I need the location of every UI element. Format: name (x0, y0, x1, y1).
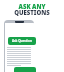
staticText: Ask Question (12, 39, 32, 43)
button[interactable]: Ask Question (8, 37, 36, 45)
button[interactable]: Get Started (14, 67, 36, 72)
staticText: QUESTIONS (0, 9, 64, 17)
staticText: ASK ANY (0, 3, 64, 11)
